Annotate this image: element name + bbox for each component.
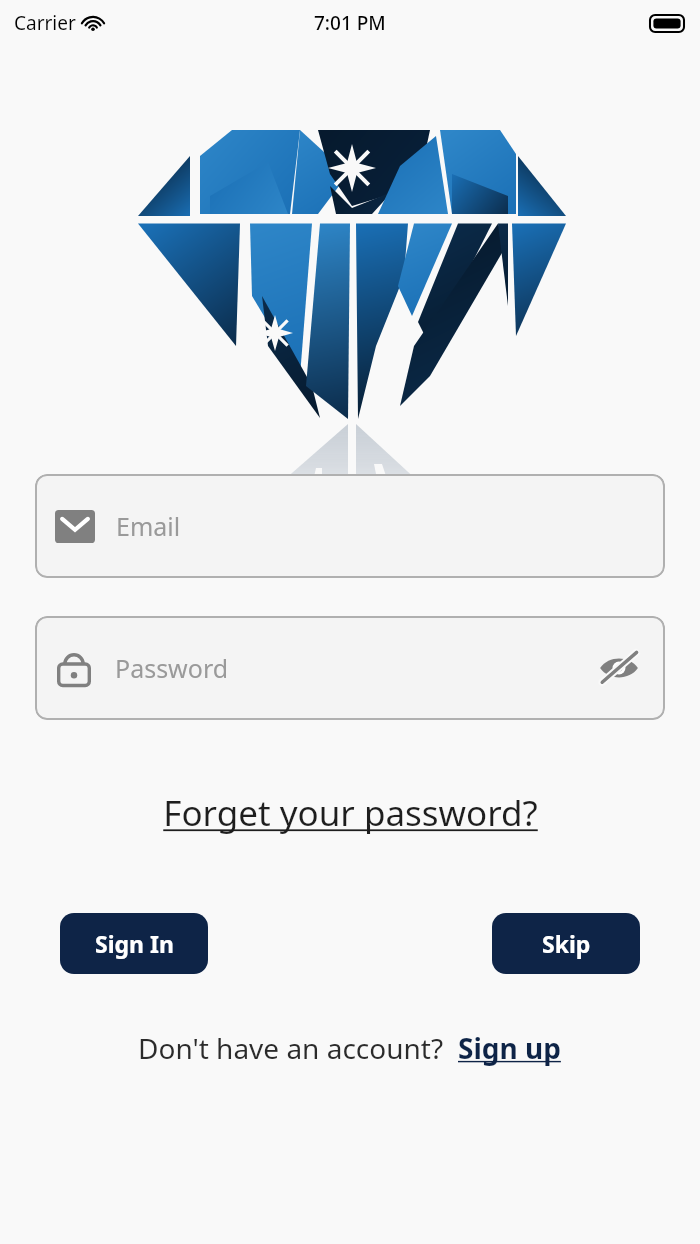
staticText: Sign In xyxy=(95,928,174,959)
button[interactable]: Password xyxy=(35,616,665,720)
button[interactable]: Show password xyxy=(593,642,645,694)
button[interactable]: Skip xyxy=(492,913,640,974)
staticText: 7:01 PM xyxy=(314,10,386,36)
button[interactable]: Sign In xyxy=(60,913,208,974)
staticText: Don't have an account? xyxy=(138,1029,444,1067)
button[interactable]: Sign up xyxy=(456,1025,563,1071)
staticText: Skip xyxy=(542,928,591,959)
button[interactable]: Forget your password? xyxy=(153,785,548,841)
staticText: Carrier xyxy=(14,10,76,36)
staticText: Password xyxy=(115,651,229,685)
staticText: Email xyxy=(116,509,181,543)
button[interactable]: Email xyxy=(35,474,665,578)
